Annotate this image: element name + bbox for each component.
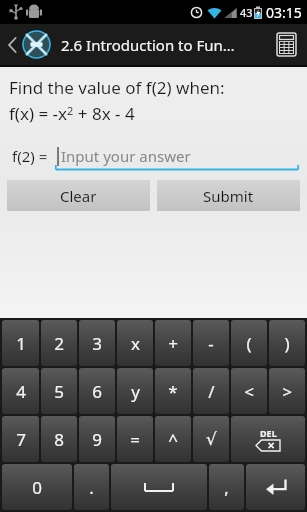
staticText: f(2) = — [12, 146, 48, 166]
button[interactable]: . — [74, 464, 109, 510]
staticText: 7 — [16, 428, 26, 451]
button[interactable]: y — [117, 368, 153, 414]
button[interactable]: - — [193, 320, 229, 366]
staticText: = — [130, 428, 140, 451]
button[interactable]: 0 — [2, 464, 72, 510]
button[interactable]: 9 — [79, 416, 115, 462]
staticText: ) — [284, 332, 290, 355]
staticText: . — [89, 476, 94, 499]
button[interactable]: 8 — [41, 416, 77, 462]
staticText: + — [168, 332, 178, 355]
button[interactable]: Delete — [231, 416, 305, 462]
staticText: Find the value of f(2) when: — [9, 76, 225, 99]
button[interactable]: ) — [269, 320, 305, 366]
button[interactable]: ( — [231, 320, 267, 366]
staticText: 5 — [54, 380, 64, 403]
button[interactable]: √ — [193, 416, 229, 462]
button[interactable]: Enter — [246, 464, 305, 510]
button[interactable]: / — [193, 368, 229, 414]
staticText: ( — [246, 332, 252, 355]
staticText: 4 — [16, 380, 26, 403]
button[interactable]: 7 — [2, 416, 39, 462]
staticText: < — [244, 380, 254, 403]
staticText: 1 — [16, 332, 26, 355]
staticText: 6 — [92, 380, 102, 403]
staticText: Submit — [203, 186, 254, 206]
staticText: / — [208, 380, 215, 403]
button[interactable]: Submit — [157, 180, 300, 211]
button[interactable]: , — [209, 464, 244, 510]
button[interactable]: 2 — [41, 320, 77, 366]
button[interactable]: 6 — [79, 368, 115, 414]
staticText: Clear — [60, 186, 97, 206]
staticText: 43 — [240, 5, 253, 20]
button[interactable]: Input your answer — [55, 141, 299, 171]
button[interactable]: 4 — [2, 368, 39, 414]
staticText: x — [131, 332, 140, 355]
staticText: 2.6 Introduction to Fun… — [61, 35, 235, 55]
button[interactable]: ^ — [155, 416, 191, 462]
button[interactable]: Clear — [7, 180, 150, 211]
staticText: √ — [206, 429, 217, 449]
staticText: 03:15 — [266, 3, 302, 22]
button[interactable]: Navigate up — [0, 24, 55, 65]
staticText: ^ — [168, 428, 178, 451]
button[interactable]: + — [155, 320, 191, 366]
staticText: 0 — [32, 476, 42, 499]
button[interactable]: < — [231, 368, 267, 414]
staticText: DEL — [260, 427, 277, 439]
staticText: 2 — [54, 332, 64, 355]
staticText: f(x) = -x2 + 8x - 4 — [9, 102, 135, 125]
button[interactable]: 1 — [2, 320, 39, 366]
staticText: * — [168, 380, 178, 403]
staticText: 9 — [92, 428, 102, 451]
button[interactable]: Calculator — [265, 24, 307, 65]
button[interactable]: = — [117, 416, 153, 462]
staticText: 8 — [54, 428, 64, 451]
staticText: y — [131, 380, 140, 403]
button[interactable]: Space — [111, 464, 207, 510]
staticText: > — [282, 380, 292, 403]
staticText: - — [208, 332, 214, 355]
button[interactable]: * — [155, 368, 191, 414]
staticText: 3 — [92, 332, 102, 355]
button[interactable]: 5 — [41, 368, 77, 414]
button[interactable]: x — [117, 320, 153, 366]
staticText: , — [224, 476, 229, 499]
staticText: Input your answer — [61, 146, 191, 166]
button[interactable]: > — [269, 368, 305, 414]
button[interactable]: 3 — [79, 320, 115, 366]
